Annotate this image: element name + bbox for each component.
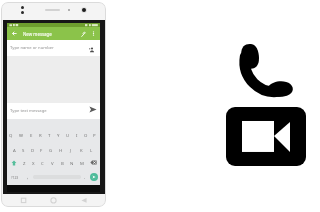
button[interactable]: X: [29, 156, 38, 169]
button[interactable]: Q: [6, 128, 16, 141]
staticText: V: [51, 160, 54, 166]
button[interactable]: Video call: [226, 107, 306, 166]
button[interactable]: L: [86, 143, 96, 156]
staticText: A: [13, 147, 16, 153]
staticText: M: [80, 160, 84, 166]
button[interactable]: O: [81, 128, 90, 141]
staticText: G: [49, 147, 53, 153]
button[interactable]: ?123: [8, 170, 22, 184]
button[interactable]: M: [77, 156, 87, 169]
staticText: P: [93, 132, 96, 138]
button[interactable]: B: [57, 156, 67, 169]
button[interactable]: I: [72, 128, 81, 141]
button[interactable]: C: [38, 156, 47, 169]
button[interactable]: G: [46, 143, 56, 156]
button[interactable]: U: [63, 128, 72, 141]
staticText: Y: [57, 132, 60, 138]
button[interactable]: T: [45, 128, 54, 141]
staticText: Q: [9, 132, 13, 138]
staticText: H: [59, 147, 63, 153]
staticText: C: [41, 160, 44, 166]
button[interactable]: Back: [12, 31, 17, 36]
staticText: I: [76, 132, 78, 138]
staticText: F: [40, 147, 43, 153]
staticText: Type text message: [10, 108, 47, 114]
button[interactable]: Call: [236, 40, 297, 101]
button[interactable]: A: [10, 143, 19, 156]
staticText: T: [48, 132, 51, 138]
staticText: Type name or number: [10, 45, 54, 51]
button[interactable]: H: [56, 143, 66, 156]
button[interactable]: J: [66, 143, 76, 156]
staticText: S: [22, 147, 25, 153]
button[interactable]: More options: [92, 31, 95, 36]
staticText: O: [84, 132, 88, 138]
staticText: L: [90, 147, 93, 153]
button[interactable]: Y: [54, 128, 63, 141]
staticText: N: [70, 160, 74, 166]
button[interactable]: Space: [33, 170, 81, 184]
staticText: New message: [23, 31, 52, 37]
button[interactable]: Send message: [88, 170, 99, 184]
button[interactable]: Shift: [8, 156, 20, 169]
button[interactable]: Z: [20, 156, 29, 169]
button[interactable]: W: [16, 128, 26, 141]
button[interactable]: D: [28, 143, 37, 156]
button[interactable]: Backspace: [87, 156, 99, 169]
staticText: J: [70, 147, 72, 153]
staticText: D: [31, 147, 35, 153]
staticText: K: [80, 147, 83, 153]
staticText: X: [32, 160, 35, 166]
button[interactable]: E: [26, 128, 36, 141]
staticText: .: [84, 174, 86, 180]
button[interactable]: Type name or number: [7, 40, 100, 56]
button[interactable]: Attach: [81, 32, 86, 37]
staticText: Z: [23, 160, 26, 166]
button[interactable]: K: [76, 143, 86, 156]
button[interactable]: N: [67, 156, 77, 169]
staticText: ,: [27, 174, 29, 180]
button[interactable]: S: [19, 143, 28, 156]
button[interactable]: .: [81, 170, 88, 184]
staticText: W: [19, 132, 23, 138]
button[interactable]: Add contact: [89, 47, 95, 53]
staticText: ?123: [11, 175, 19, 180]
staticText: B: [61, 160, 64, 166]
button[interactable]: F: [37, 143, 46, 156]
staticText: E: [30, 132, 33, 138]
button[interactable]: ,: [23, 170, 32, 184]
button[interactable]: P: [90, 128, 99, 141]
staticText: U: [66, 132, 70, 138]
button[interactable]: Type text message: [7, 103, 100, 119]
button[interactable]: R: [36, 128, 45, 141]
button[interactable]: V: [47, 156, 57, 169]
staticText: R: [39, 132, 42, 138]
button[interactable]: Send: [89, 106, 97, 113]
